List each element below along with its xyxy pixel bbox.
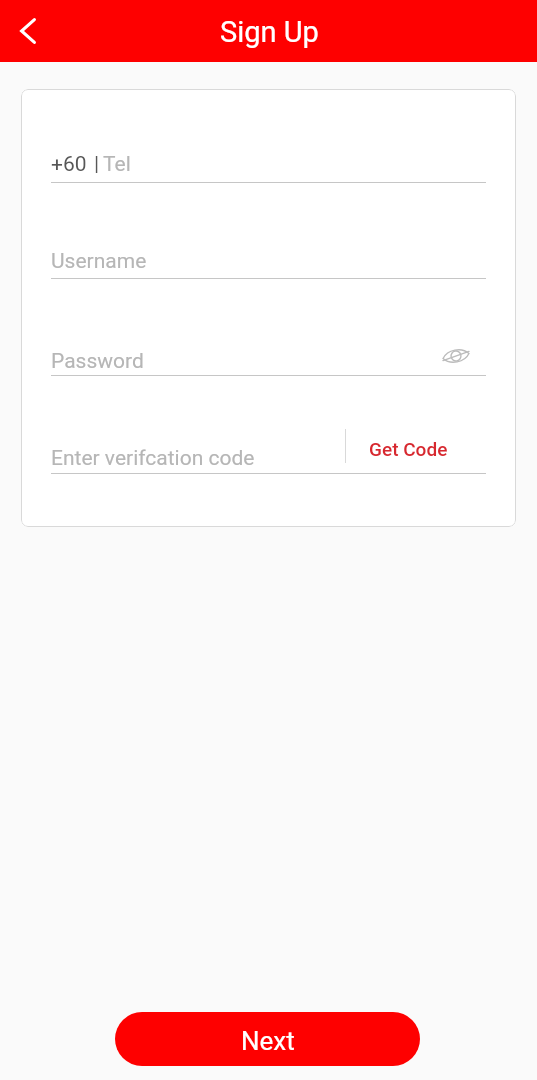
button[interactable]: Username: [51, 241, 486, 278]
button[interactable]: Enter verifcation code: [51, 438, 341, 473]
staticText: Password: [51, 349, 144, 374]
staticText: Sign Up: [220, 15, 319, 49]
staticText: Username: [51, 249, 147, 274]
staticText: +60: [51, 152, 87, 177]
button[interactable]: Get Code: [346, 434, 472, 463]
staticText: Get Code: [369, 438, 448, 460]
staticText: Next: [241, 1026, 295, 1056]
staticText: Tel: [103, 152, 131, 177]
button[interactable]: Show password: [438, 338, 474, 374]
button[interactable]: Password: [51, 341, 431, 375]
button[interactable]: Back: [3, 6, 53, 56]
staticText: |: [94, 152, 100, 177]
staticText: Enter verifcation code: [51, 446, 255, 471]
button[interactable]: Next: [115, 1012, 420, 1066]
button[interactable]: +60: [51, 144, 486, 183]
